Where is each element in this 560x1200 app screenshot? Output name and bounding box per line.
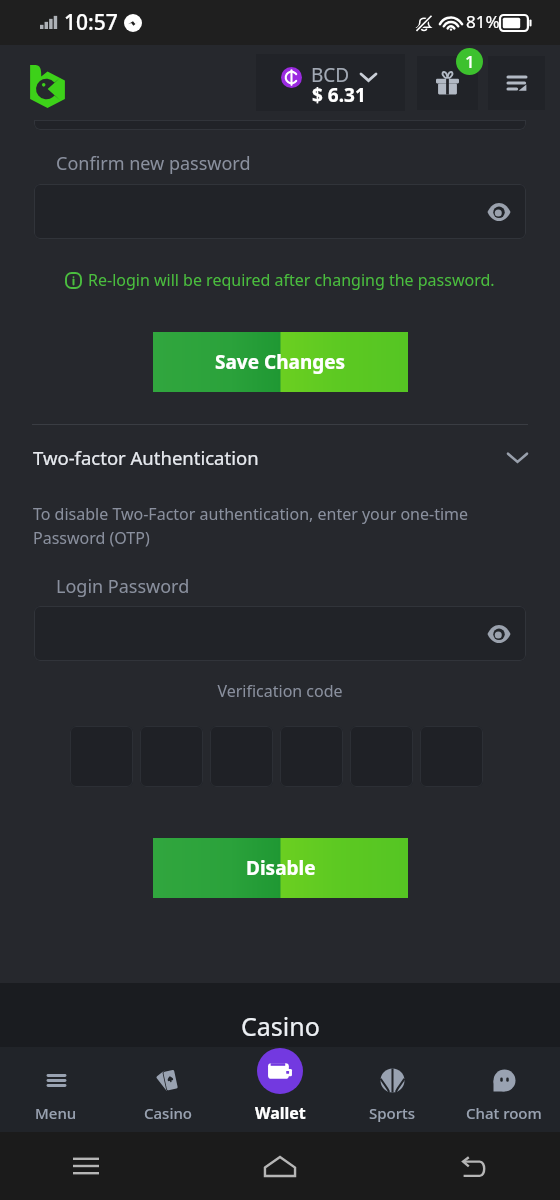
staticText: Re-login will be required after changing… [88, 269, 495, 291]
button[interactable] [280, 726, 343, 787]
staticText: Save Changes [215, 349, 346, 375]
staticText: Casino [144, 1103, 193, 1123]
button[interactable] [70, 726, 133, 787]
button[interactable]: Wallet [224, 1047, 336, 1132]
button[interactable]: Gifts [417, 56, 478, 110]
staticText: Confirm new password [56, 151, 251, 176]
button[interactable]: Show password [34, 606, 526, 661]
staticText: Wallet [255, 1102, 306, 1124]
button[interactable]: Chat room [448, 1047, 560, 1132]
staticText: Chat room [466, 1103, 542, 1123]
button[interactable]: BCD [256, 54, 405, 111]
button[interactable]: Recents [60, 1140, 112, 1192]
button[interactable] [420, 726, 483, 787]
staticText: 1 [465, 50, 475, 73]
button[interactable]: Home [254, 1140, 306, 1192]
staticText: $ 6.31 [312, 82, 366, 108]
button[interactable]: Bet slip [488, 56, 545, 110]
staticText: Verification code [0, 680, 560, 702]
button[interactable]: Disable [153, 838, 408, 898]
button[interactable]: Two-factor Authentication [0, 440, 560, 474]
button[interactable] [210, 726, 273, 787]
button[interactable] [140, 726, 203, 787]
button[interactable]: Show password [34, 184, 526, 239]
staticText: Login Password [56, 574, 190, 599]
button[interactable]: Casino [112, 1047, 224, 1132]
button[interactable]: Home [29, 58, 66, 108]
button[interactable]: Back [448, 1140, 500, 1192]
button[interactable]: Sports [336, 1047, 448, 1132]
staticText: Disable [246, 855, 316, 881]
staticText: BCD [311, 62, 350, 88]
staticText: Casino [241, 1009, 320, 1043]
button[interactable] [350, 726, 413, 787]
staticText: Menu [35, 1103, 77, 1123]
staticText: Two-factor Authentication [33, 445, 259, 470]
other: Show password [487, 626, 511, 642]
staticText: To disable Two-Factor authentication, en… [33, 503, 469, 549]
other: Show password [487, 204, 511, 220]
staticText: Sports [369, 1103, 416, 1123]
button[interactable]: Save Changes [153, 332, 408, 392]
staticText: 81% [466, 10, 500, 33]
button[interactable]: Menu [0, 1047, 112, 1132]
staticText: 10:57 [64, 8, 118, 37]
